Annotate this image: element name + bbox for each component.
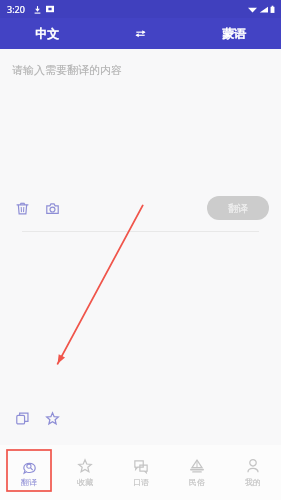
button[interactable]: 翻译 — [0, 445, 57, 500]
button[interactable]: 我的 — [225, 445, 281, 500]
button[interactable]: 收藏 — [57, 445, 113, 500]
button[interactable]: Camera input — [40, 196, 64, 220]
button[interactable]: Copy — [10, 406, 34, 430]
staticText: 中文 — [35, 26, 59, 41]
staticText: 翻译 — [228, 202, 248, 215]
staticText: 3:20 — [7, 3, 25, 15]
staticText: 蒙语 — [222, 26, 246, 41]
button[interactable]: Clear text — [10, 196, 34, 220]
button[interactable]: 民俗 — [169, 445, 225, 500]
button[interactable]: 中文 — [0, 18, 93, 49]
staticText: 民俗 — [189, 477, 205, 487]
staticText: 翻译 — [21, 477, 37, 487]
staticText: 口语 — [133, 477, 149, 487]
button[interactable]: 口语 — [113, 445, 169, 500]
button[interactable]: 蒙语 — [187, 18, 281, 49]
staticText: 我的 — [245, 477, 261, 487]
button[interactable]: 翻译 — [207, 196, 269, 220]
staticText: 请输入需要翻译的内容 — [12, 63, 122, 77]
button[interactable]: Swap languages — [93, 18, 187, 49]
button[interactable]: Favorite — [40, 406, 64, 430]
staticText: 收藏 — [77, 477, 93, 487]
